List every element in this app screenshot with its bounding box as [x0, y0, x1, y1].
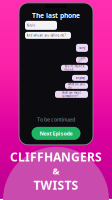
- staticText: I got it: [78, 56, 85, 63]
- staticText: Sorry: [79, 46, 85, 50]
- staticText: You're my best friend: [64, 64, 84, 71]
- staticText: Next Episode: [39, 130, 72, 137]
- staticText: Shall we meet somewhere?: [62, 91, 81, 98]
- staticText: What do you do: [68, 82, 85, 89]
- staticText: And why are you calling me?: [26, 34, 65, 37]
- staticText: Anyway: [75, 76, 84, 80]
- staticText: The last phone: [32, 11, 80, 20]
- staticText: &: [52, 165, 59, 177]
- staticText: Nicole: [26, 24, 35, 27]
- staticText: TWISTS: [33, 177, 78, 193]
- staticText: CLIFFHANGERS: [10, 149, 102, 165]
- staticText: To be continued: [37, 116, 75, 123]
- button[interactable]: Next Episode: [31, 127, 80, 140]
